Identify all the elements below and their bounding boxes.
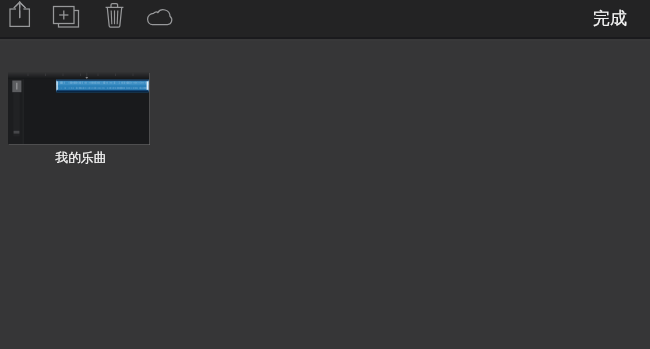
button[interactable]: iCloud xyxy=(136,0,184,37)
staticText: 我的乐曲 xyxy=(55,150,107,166)
button[interactable]: 完成 xyxy=(584,3,636,34)
button[interactable]: 我的乐曲 project xyxy=(8,72,150,166)
button[interactable]: Duplicate xyxy=(44,0,86,37)
button[interactable]: Share xyxy=(0,0,39,37)
button[interactable]: Delete xyxy=(95,0,135,37)
staticText: 完成 xyxy=(593,8,627,29)
